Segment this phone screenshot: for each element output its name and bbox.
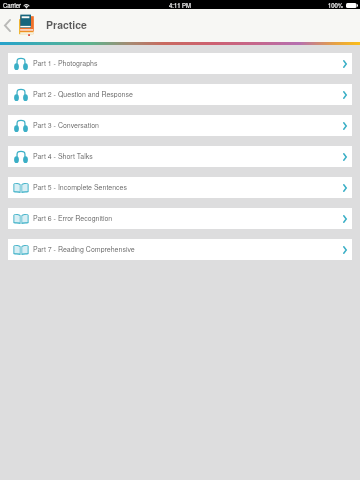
staticText: Part 7 - Reading Comprehensive: [33, 244, 135, 254]
staticText: Practice: [46, 17, 87, 32]
staticText: Carrier: [3, 1, 21, 9]
button[interactable]: Part 4 - Short Talks: [8, 146, 352, 167]
button[interactable]: Part 5 - Incomplete Sentences: [8, 177, 352, 198]
staticText: Part 6 - Error Recognition: [33, 213, 113, 223]
staticText: 100%: [328, 1, 344, 9]
button[interactable]: Part 7 - Reading Comprehensive: [8, 239, 352, 260]
button[interactable]: Back: [0, 9, 19, 42]
staticText: Part 5 - Incomplete Sentences: [33, 182, 127, 192]
button[interactable]: Part 3 - Conversation: [8, 115, 352, 136]
staticText: Part 1 - Photographs: [33, 58, 98, 68]
staticText: Part 2 - Question and Response: [33, 89, 133, 99]
staticText: Part 3 - Conversation: [33, 120, 99, 130]
button[interactable]: Part 6 - Error Recognition: [8, 208, 352, 229]
staticText: 4:11 PM: [169, 1, 191, 9]
button[interactable]: Part 2 - Question and Response: [8, 84, 352, 105]
button[interactable]: Part 1 - Photographs: [8, 53, 352, 74]
staticText: Part 4 - Short Talks: [33, 151, 93, 161]
